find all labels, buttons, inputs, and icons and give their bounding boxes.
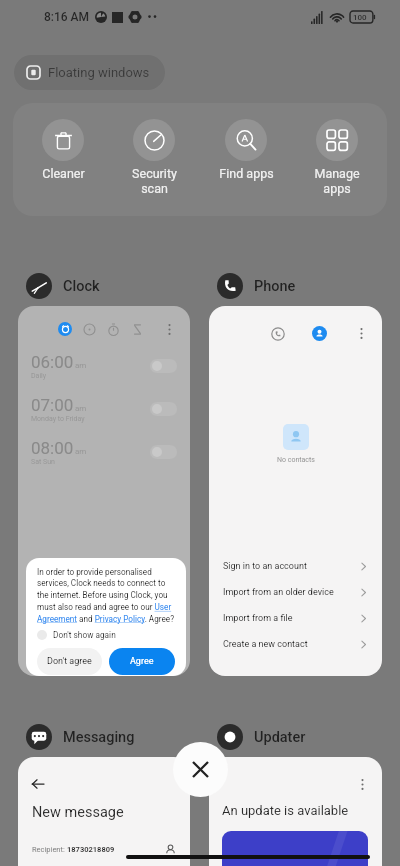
staticText: Monday to Friday [31,415,85,423]
staticText: Phone [254,278,296,295]
staticText: Cleaner [42,166,85,181]
staticText: Agree [130,656,154,667]
staticText: No contacts [277,456,315,464]
staticText: 08:00 [31,438,74,458]
button[interactable]: Sign in to an account [223,553,368,579]
staticText: In order to provide personalised service… [37,567,175,624]
staticText: Don't agree [47,656,92,667]
staticText: Sign in to an account [223,561,307,572]
staticText: Manage apps [314,166,360,196]
staticText: Floating windows [48,65,150,80]
button[interactable]: Manage apps [295,119,379,196]
staticText: 07:00 [31,395,74,415]
staticText: 100 [353,13,367,22]
staticText: am [75,404,87,413]
button[interactable]: Create a new contact [223,631,368,657]
button[interactable]: Floating windows [14,55,165,90]
staticText: An update is available [222,803,349,818]
button[interactable]: Find apps [204,119,288,181]
staticText: Updater [254,729,306,746]
button[interactable]: Import from a file [223,605,368,631]
staticText: Create a new contact [223,639,308,650]
staticText: Recipient: [32,845,67,854]
button[interactable]: Agree [109,648,175,675]
staticText: Daily [31,372,47,380]
staticText: Messaging [63,729,135,746]
button[interactable]: Back [18,757,190,866]
staticText: 18730218809 [67,845,115,854]
staticText: Import from a file [223,613,293,624]
button[interactable]: Toggle alarm [150,445,177,459]
staticText: Security scan [132,166,177,196]
button[interactable]: Cleaner [21,119,105,181]
staticText: am [75,447,87,456]
button[interactable]: 06:00 [18,306,190,676]
staticText: am [75,361,87,370]
button[interactable]: Toggle alarm [150,402,177,416]
staticText: 8:16 AM [44,10,90,24]
other: Back [32,778,44,790]
button[interactable]: Import from an older device [223,579,368,605]
button[interactable]: Close all [173,742,228,797]
staticText: Clock [63,278,100,295]
staticText: Import from an older device [223,587,334,598]
staticText: Find apps [219,166,274,181]
staticText: 06:00 [31,352,74,372]
staticText: New message [32,804,124,821]
button[interactable]: Don't agree [37,648,102,675]
button[interactable]: No contacts [209,306,382,676]
button[interactable]: Toggle alarm [150,359,177,373]
button[interactable]: Don't show again [37,627,116,643]
button[interactable]: Security scan [112,119,196,196]
staticText: Don't show again [53,630,116,640]
button[interactable]: An update is available [209,757,382,866]
staticText: Sat Sun [31,458,55,466]
